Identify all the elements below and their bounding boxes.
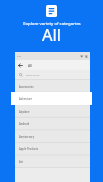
button[interactable]: Adventure [11, 92, 92, 105]
button[interactable]: App icon [46, 5, 57, 17]
staticText: Apple Products [19, 147, 39, 151]
button[interactable]: Apple Products [15, 142, 90, 155]
button[interactable]: Back [18, 63, 23, 68]
staticText: All [42, 23, 62, 45]
staticText: Adventure [19, 97, 33, 101]
staticText: Anniversary [19, 135, 34, 139]
button[interactable]: Accessories [15, 80, 90, 93]
staticText: Accessories [19, 85, 34, 89]
button[interactable]: Anniversary [15, 130, 90, 143]
staticText: Search this list [26, 74, 40, 77]
button[interactable]: Search this list [15, 70, 90, 80]
button[interactable]: Android [15, 117, 90, 130]
button[interactable]: Art [15, 155, 90, 168]
staticText: Art [19, 160, 23, 164]
staticText: 9:30 [17, 55, 22, 58]
staticText: All [28, 63, 33, 68]
staticText: Explore variety of categories [23, 20, 81, 26]
button[interactable]: Airplane [15, 105, 90, 118]
staticText: Android [19, 122, 30, 126]
staticText: Airplane [19, 110, 30, 114]
